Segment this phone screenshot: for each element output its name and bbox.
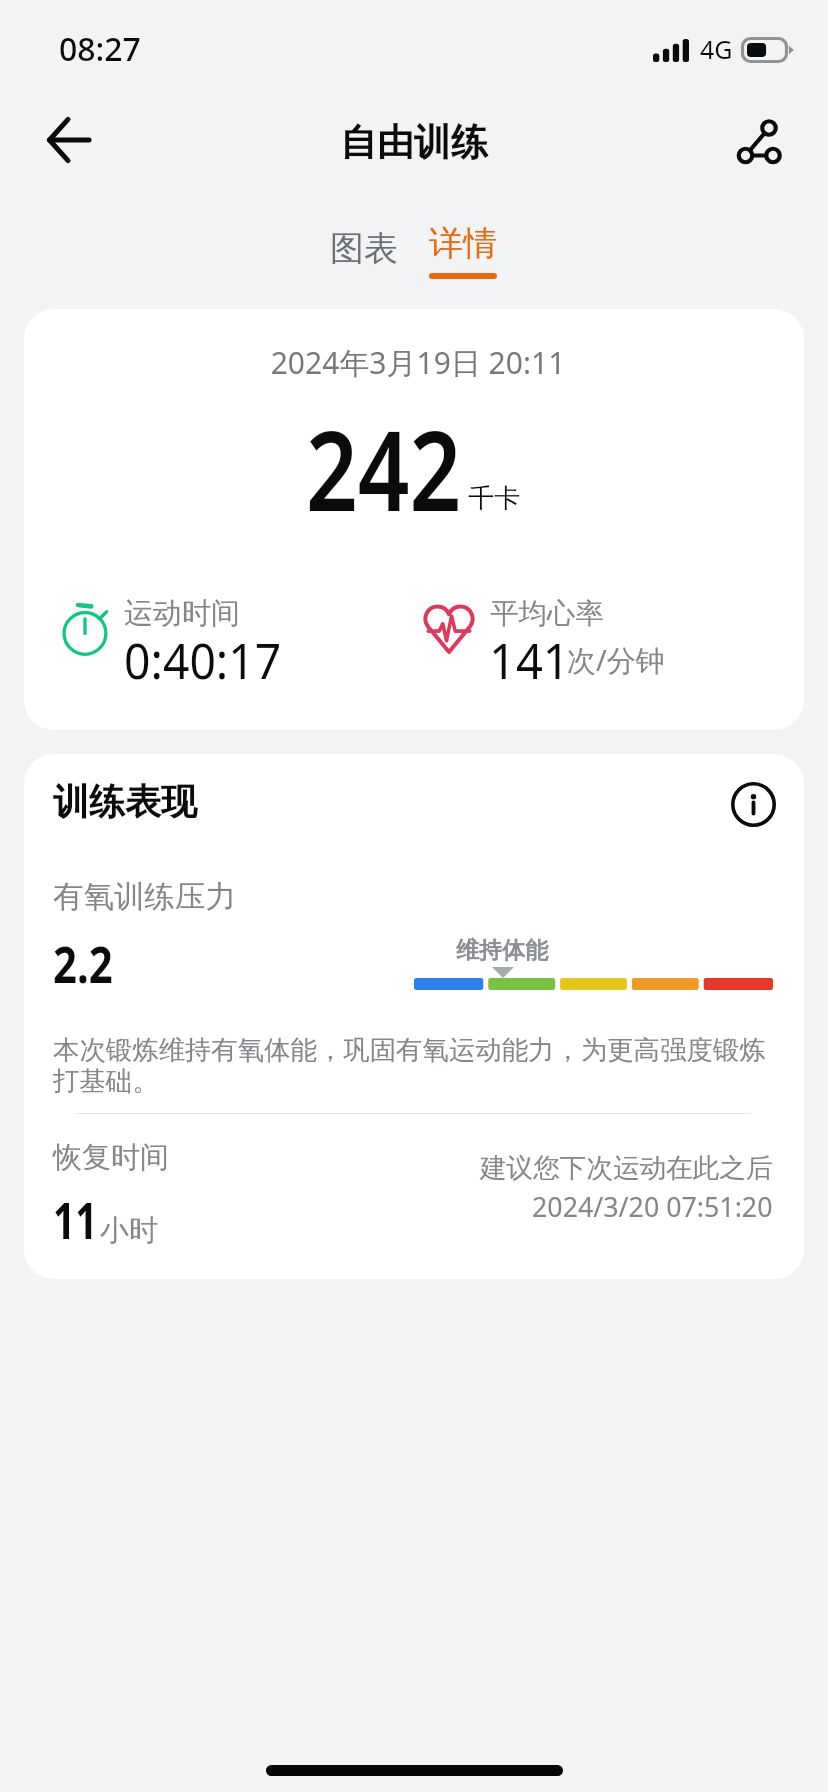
staticText: 242 bbox=[306, 392, 462, 543]
staticText: 11 bbox=[53, 1184, 98, 1253]
button[interactable]: Share bbox=[725, 109, 791, 175]
staticText: 训练表现 bbox=[53, 779, 197, 824]
staticText: 详情 bbox=[429, 222, 497, 265]
staticText: 2024年3月19日 20:11 bbox=[28, 342, 804, 383]
staticText: 141 bbox=[489, 627, 571, 694]
button[interactable]: Back bbox=[35, 107, 101, 173]
staticText: 2024/3/20 07:51:20 bbox=[532, 1188, 773, 1225]
staticText: 4G bbox=[700, 32, 733, 66]
button[interactable]: 详情 bbox=[413, 212, 513, 284]
staticText: 0:40:17 bbox=[124, 627, 282, 694]
staticText: 建议您下次运动在此之后 bbox=[480, 1151, 773, 1185]
staticText: 自由训练 bbox=[340, 119, 488, 166]
button[interactable]: 图表 bbox=[314, 218, 414, 278]
staticText: 08:27 bbox=[59, 27, 141, 71]
staticText: 恢复时间 bbox=[53, 1139, 169, 1176]
staticText: 维持体能 bbox=[456, 936, 548, 965]
staticText: 平均心率 bbox=[490, 596, 604, 632]
button[interactable]: Info bbox=[725, 776, 781, 832]
staticText: 图表 bbox=[330, 227, 398, 270]
staticText: 千卡 bbox=[468, 482, 520, 515]
staticText: 2.2 bbox=[53, 928, 113, 997]
staticText: 运动时间 bbox=[124, 595, 240, 632]
staticText: 本次锻炼维持有氧体能，巩固有氧运动能力，为更高强度锻炼打基础。 bbox=[53, 1034, 775, 1098]
staticText: 次/分钟 bbox=[567, 640, 665, 680]
staticText: 小时 bbox=[100, 1212, 158, 1249]
staticText: 有氧训练压力 bbox=[53, 878, 236, 916]
